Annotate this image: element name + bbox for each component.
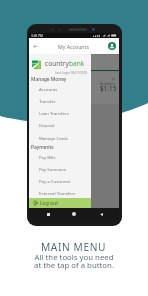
staticText: > <box>112 76 115 83</box>
button[interactable]: Deposit <box>29 120 91 129</box>
staticText: Pay a Customer <box>39 178 71 184</box>
button[interactable]: Log out <box>29 198 91 208</box>
staticText: All the tools you need <box>34 252 114 263</box>
button[interactable]: Accounts <box>29 84 91 93</box>
button[interactable]: Recents <box>40 208 56 220</box>
staticText: External Transfers <box>39 190 76 196</box>
staticText: Loan Transfers <box>39 110 69 116</box>
button[interactable]: External Transfers <box>29 188 91 197</box>
button[interactable]: Home <box>66 208 82 220</box>
staticText: Manage Money <box>31 76 67 83</box>
staticText: $1.15 <box>100 84 117 93</box>
button[interactable]: Loan Transfers <box>29 108 91 117</box>
staticText: MAIN MENU <box>41 240 107 254</box>
staticText: Log out <box>40 200 58 207</box>
button[interactable]: Profile <box>105 38 119 54</box>
staticText: Manage Cards <box>39 135 69 141</box>
staticText: Deposit <box>39 122 55 128</box>
button[interactable]: Pay Bills <box>29 152 91 161</box>
staticText: My Accounts <box>58 43 89 50</box>
staticText: Payments <box>31 144 54 151</box>
button[interactable]: Pay Someone <box>29 164 91 173</box>
button[interactable]: Manage Cards <box>29 133 91 142</box>
button[interactable]: Back <box>93 208 109 220</box>
staticText: Accounts <box>39 86 58 92</box>
button[interactable]: Back <box>29 38 42 54</box>
button[interactable]: Pay a Customer <box>29 176 91 185</box>
staticText: Last Login 05/21/2018 <box>55 71 88 75</box>
staticText: at the tap of a button. <box>34 260 114 271</box>
staticText: Transfer <box>39 98 56 104</box>
staticText: Pay Bills <box>39 154 56 160</box>
staticText: bank <box>69 59 85 68</box>
staticText: country <box>45 59 69 68</box>
staticText: Available <box>100 81 116 86</box>
staticText: Pay Someone <box>39 166 67 172</box>
staticText: 3:45 PM <box>31 34 43 38</box>
button[interactable]: Transfer <box>29 96 91 105</box>
